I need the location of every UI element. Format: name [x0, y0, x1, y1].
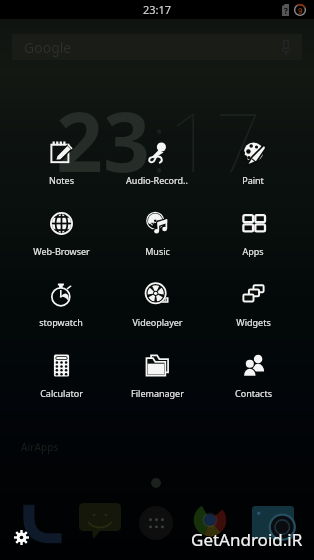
button[interactable]: Music — [109, 204, 205, 270]
staticText: Filemanager — [131, 387, 184, 399]
button[interactable]: Messaging — [79, 503, 121, 539]
staticText: Audio-Record.. — [126, 174, 188, 186]
button[interactable]: Filemanager — [109, 346, 205, 412]
button[interactable]: Widgets — [205, 275, 301, 341]
staticText: Calculator — [40, 387, 83, 399]
staticText: 23:17 — [143, 2, 172, 17]
button[interactable]: Phone — [19, 503, 62, 544]
button[interactable]: Settings — [14, 530, 29, 545]
button[interactable]: Calculator — [13, 346, 109, 412]
staticText: Widgets — [236, 316, 271, 328]
staticText: Apps — [242, 245, 264, 257]
staticText: Google — [24, 38, 72, 57]
staticText: stopwatch — [39, 316, 83, 328]
staticText: ? — [284, 5, 288, 16]
staticText: Paint — [242, 174, 264, 186]
button[interactable]: Notes — [13, 133, 109, 199]
staticText: Notes — [49, 174, 74, 186]
staticText: 9 — [298, 5, 303, 16]
staticText: Videoplayer — [132, 316, 183, 328]
staticText: AirApps — [21, 440, 59, 454]
staticText: 23 — [56, 84, 150, 196]
button[interactable]: Contacts — [205, 346, 301, 412]
button[interactable]: Paint — [205, 133, 301, 199]
button[interactable]: Videoplayer — [109, 275, 205, 341]
button[interactable]: Camera — [252, 506, 294, 539]
button[interactable]: stopwatch — [13, 275, 109, 341]
button[interactable]: All apps — [139, 506, 173, 540]
staticText: Music — [145, 245, 170, 257]
staticText: Contacts — [235, 387, 272, 399]
staticText: GetAndroid.iR — [191, 528, 303, 551]
button[interactable]: Web-Browser — [13, 204, 109, 270]
staticText: Web-Browser — [33, 245, 90, 257]
staticText: :17 — [150, 84, 262, 196]
button[interactable]: Audio-Record.. — [109, 133, 205, 199]
button[interactable]: Apps — [205, 204, 301, 270]
button[interactable]: Chrome — [193, 503, 227, 537]
